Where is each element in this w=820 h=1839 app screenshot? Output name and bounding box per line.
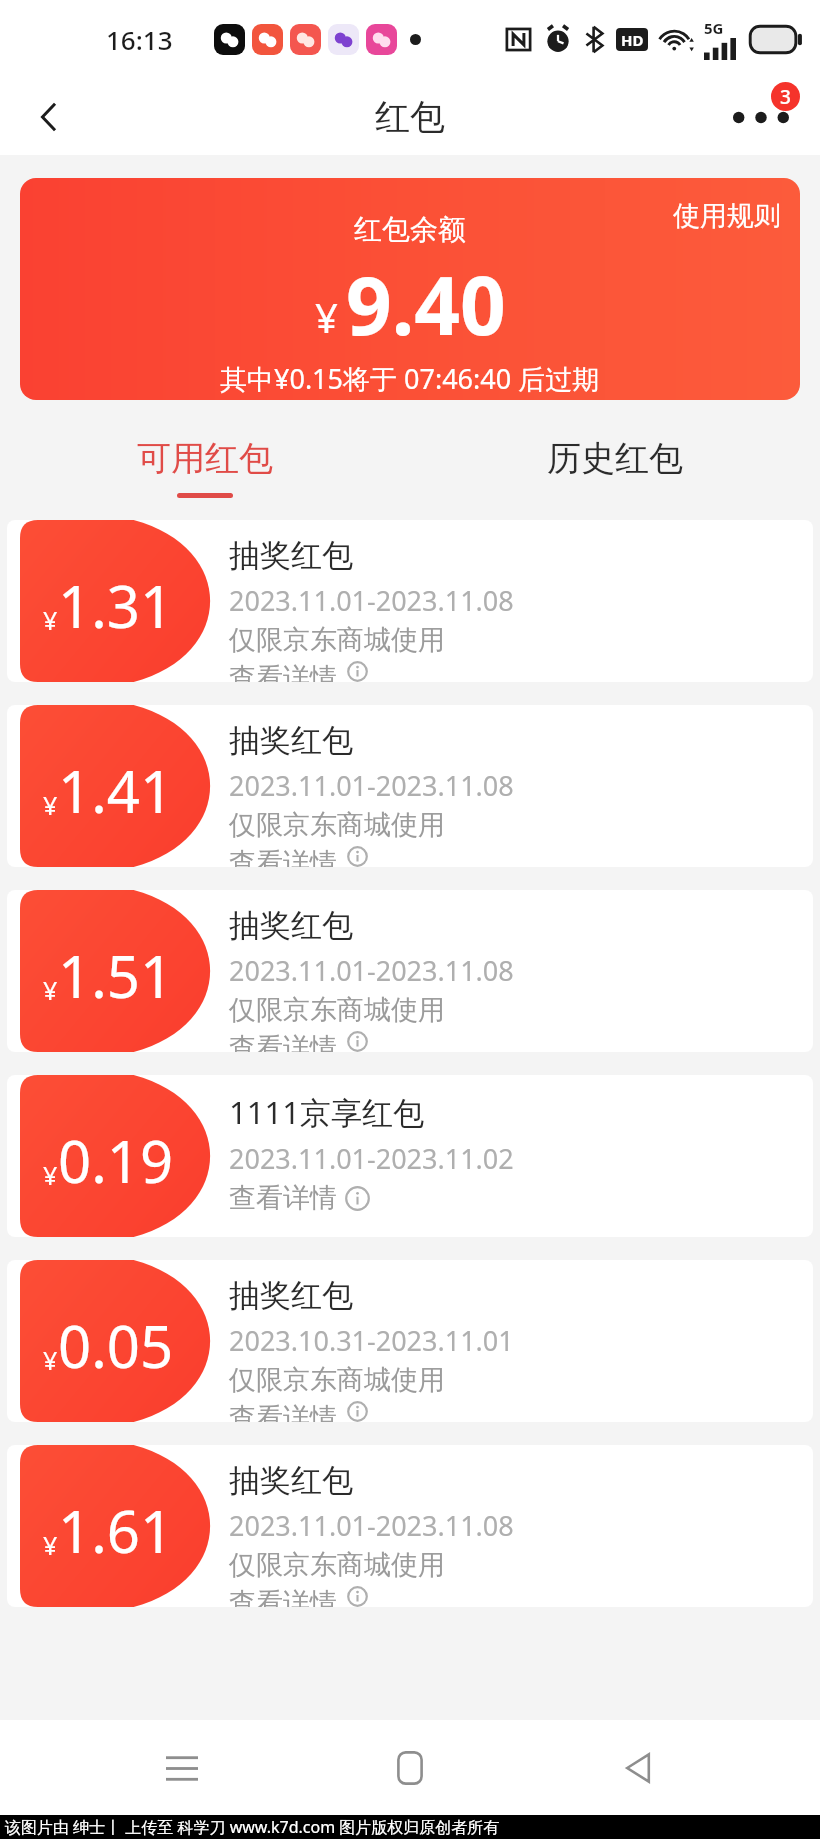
- staticText: 2023.11.01-2023.11.02: [229, 1140, 514, 1177]
- staticText: ¥: [43, 1343, 58, 1377]
- staticText: 抽奖红包: [229, 1461, 353, 1500]
- button[interactable]: ¥: [7, 890, 813, 1052]
- button[interactable]: 历史红包: [410, 400, 820, 520]
- staticText: 查看详情: [229, 661, 337, 682]
- button[interactable]: 使用规则: [20, 178, 800, 400]
- button[interactable]: 查看详情: [229, 1181, 370, 1215]
- staticText: 可用红包: [137, 437, 273, 480]
- button[interactable]: More options: [702, 78, 820, 155]
- button[interactable]: 查看详情: [229, 846, 370, 867]
- staticText: 查看详情: [229, 1031, 337, 1052]
- staticText: ¥: [43, 603, 58, 637]
- staticText: 9.40: [346, 249, 506, 358]
- staticText: ¥: [43, 1158, 58, 1192]
- staticText: 查看详情: [229, 1401, 337, 1422]
- staticText: 2023.11.01-2023.11.08: [229, 767, 514, 804]
- button[interactable]: ¥: [7, 705, 813, 867]
- button[interactable]: ¥: [7, 1445, 813, 1607]
- staticText: 仅限京东商城使用: [229, 1363, 445, 1397]
- staticText: 查看详情: [229, 1586, 337, 1607]
- staticText: 抽奖红包: [229, 1276, 353, 1315]
- staticText: 1.61: [58, 1491, 174, 1570]
- button[interactable]: ¥: [7, 520, 813, 682]
- staticText: 仅限京东商城使用: [229, 993, 445, 1027]
- staticText: 16:13: [106, 22, 173, 57]
- staticText: 抽奖红包: [229, 721, 353, 760]
- staticText: 2023.11.01-2023.11.08: [229, 1507, 514, 1544]
- button[interactable]: Back: [596, 1726, 680, 1810]
- staticText: ¥: [43, 788, 58, 822]
- staticText: 2023.11.01-2023.11.08: [229, 952, 514, 989]
- button[interactable]: 可用红包: [0, 400, 410, 520]
- staticText: 2023.11.01-2023.11.08: [229, 582, 514, 619]
- staticText: 1.51: [58, 936, 174, 1015]
- staticText: 仅限京东商城使用: [229, 623, 445, 657]
- staticText: 1111京享红包: [229, 1091, 424, 1133]
- button[interactable]: 查看详情: [229, 1401, 370, 1422]
- staticText: 仅限京东商城使用: [229, 1548, 445, 1582]
- staticText: 3: [780, 84, 791, 110]
- staticText: 1.41: [58, 751, 174, 830]
- button[interactable]: ¥: [7, 1075, 813, 1237]
- staticText: 查看详情: [229, 1181, 337, 1215]
- staticText: 0.19: [58, 1121, 174, 1200]
- staticText: 1.31: [58, 566, 174, 645]
- button[interactable]: 查看详情: [229, 661, 370, 682]
- button[interactable]: Back: [0, 78, 100, 155]
- staticText: ¥: [315, 290, 338, 344]
- button[interactable]: 查看详情: [229, 1031, 370, 1052]
- staticText: 红包: [375, 95, 445, 139]
- staticText: 红包余额: [354, 212, 466, 247]
- button[interactable]: Home: [368, 1726, 452, 1810]
- staticText: 查看详情: [229, 846, 337, 867]
- staticText: 仅限京东商城使用: [229, 808, 445, 842]
- staticText: 其中¥0.15将于 07:46:40 后过期: [220, 360, 600, 397]
- staticText: 0.05: [58, 1306, 174, 1385]
- button[interactable]: ¥: [7, 1260, 813, 1422]
- button[interactable]: 使用规则: [673, 199, 781, 233]
- staticText: 5G: [704, 18, 724, 38]
- staticText: 2023.10.31-2023.11.01: [229, 1322, 514, 1359]
- staticText: ¥: [43, 973, 58, 1007]
- staticText: HD: [621, 30, 644, 50]
- staticText: 抽奖红包: [229, 536, 353, 575]
- staticText: 历史红包: [547, 437, 683, 480]
- staticText: 抽奖红包: [229, 906, 353, 945]
- button[interactable]: 查看详情: [229, 1586, 370, 1607]
- staticText: 该图片由 绅士丨 上传至 科学刀 www.k7d.com 图片版权归原创者所有: [5, 1816, 500, 1838]
- button[interactable]: Recent apps: [140, 1726, 224, 1810]
- staticText: ¥: [43, 1528, 58, 1562]
